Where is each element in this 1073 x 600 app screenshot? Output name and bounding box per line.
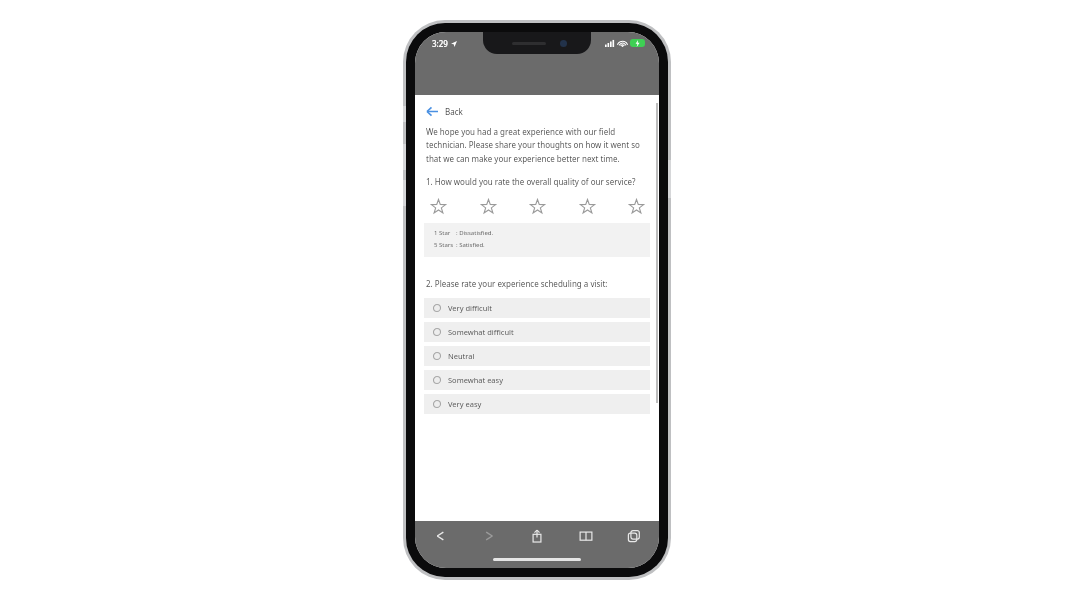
staticText: : Satisfied.	[456, 241, 485, 249]
button[interactable]: Tabs	[619, 522, 649, 550]
staticText: 1. How would you rate the overall qualit…	[426, 176, 636, 187]
staticText: : Dissatisfied.	[456, 229, 494, 237]
staticText: Very difficult	[448, 303, 492, 313]
button[interactable]: Bookmarks	[571, 522, 601, 550]
button[interactable]: Very easy	[424, 394, 650, 414]
button[interactable]: Somewhat difficult	[424, 322, 650, 342]
button[interactable]: Back	[425, 522, 455, 550]
button[interactable]: Very difficult	[424, 298, 650, 318]
button[interactable]: Forward	[474, 522, 504, 550]
button[interactable]: Rate 5 star	[626, 196, 646, 216]
staticText: Neutral	[448, 351, 475, 361]
button[interactable]: Neutral	[424, 346, 650, 366]
button[interactable]: Somewhat easy	[424, 370, 650, 390]
button[interactable]: Back	[424, 104, 465, 119]
button[interactable]: Rate 3 star	[527, 196, 547, 216]
button[interactable]: Share	[522, 522, 552, 550]
staticText: 3:29	[432, 38, 448, 49]
staticText: 5 Stars	[434, 241, 456, 249]
staticText: Very easy	[448, 399, 482, 409]
staticText: Somewhat difficult	[448, 327, 514, 337]
button[interactable]: Rate 1 star	[428, 196, 448, 216]
staticText: 2. Please rate your experience schedulin…	[426, 278, 608, 289]
staticText: Somewhat easy	[448, 375, 503, 385]
staticText: 1 Star	[434, 229, 456, 237]
staticText: We hope you had a great experience with …	[426, 126, 648, 164]
button[interactable]: Rate 2 star	[478, 196, 498, 216]
button[interactable]: Rate 4 star	[577, 196, 597, 216]
staticText: Back	[445, 106, 463, 117]
